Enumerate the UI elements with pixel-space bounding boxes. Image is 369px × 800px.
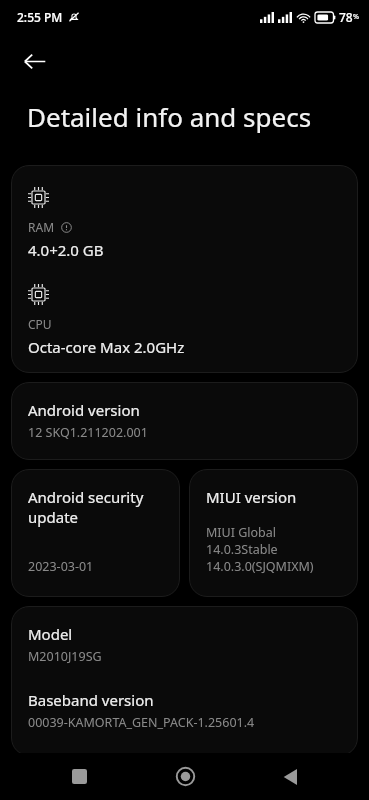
staticText: %	[353, 12, 359, 22]
staticText: Octa-core Max 2.0GHz	[28, 337, 185, 357]
staticText: M2010J19SG	[28, 648, 102, 665]
button[interactable]: Android version	[11, 382, 358, 460]
button[interactable]: Android security	[11, 469, 180, 597]
staticText: 12 SKQ1.211202.001	[28, 424, 148, 441]
staticText: 14.0.3.0(SJQMIXM)	[206, 558, 314, 575]
button[interactable]: Model	[11, 606, 358, 756]
staticText: update	[28, 507, 79, 527]
button[interactable]: Back	[12, 39, 56, 83]
button[interactable]: Back	[264, 753, 316, 800]
staticText: 4.0+2.0 GB	[28, 240, 104, 260]
staticText: MIUI Global	[206, 524, 277, 541]
button[interactable]: Recents	[53, 753, 105, 800]
staticText: 2:55 PM	[17, 9, 63, 25]
staticText: 14.0.3Stable	[206, 541, 278, 558]
staticText: Android security	[28, 487, 144, 507]
staticText: Model	[28, 624, 73, 644]
staticText: 2023-03-01	[28, 558, 94, 575]
staticText: Baseband version	[28, 690, 154, 710]
staticText: 00039-KAMORTA_GEN_PACK-1.25601.4	[28, 714, 255, 731]
staticText: 78	[339, 9, 353, 25]
button[interactable]: MIUI version	[189, 469, 358, 597]
staticText: Android version	[28, 400, 140, 420]
button[interactable]: RAM	[11, 165, 358, 373]
staticText: RAM	[28, 219, 55, 235]
staticText: Detailed info and specs	[27, 99, 312, 134]
button[interactable]: Home	[159, 753, 211, 800]
staticText: CPU	[28, 316, 52, 332]
staticText: MIUI version	[206, 487, 297, 507]
